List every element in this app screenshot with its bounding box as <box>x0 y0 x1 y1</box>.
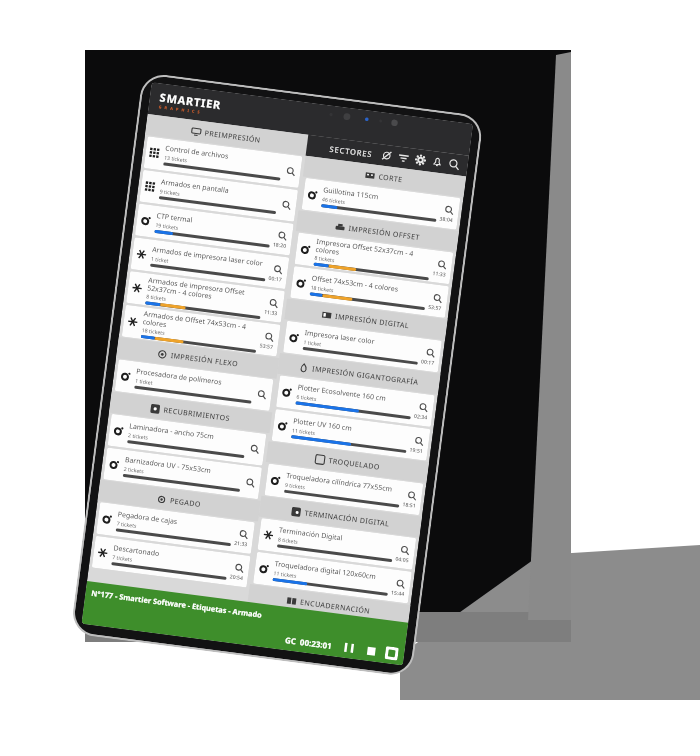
button[interactable]: CORTE <box>303 156 466 197</box>
button[interactable]: Notifications <box>428 153 447 172</box>
button[interactable]: Inspect Plotter UV 160 cm <box>412 434 425 447</box>
button[interactable]: Inspect Terminación Digital <box>398 543 411 556</box>
button[interactable]: Terminación Digital <box>257 518 416 570</box>
button[interactable]: Pegadora de cajas <box>96 502 255 554</box>
button[interactable]: Inspect Armados de Offset 74x53cm - 4 co… <box>262 330 276 343</box>
staticText: Impresora laser color <box>304 328 376 347</box>
button[interactable]: Armados de impresora laser color <box>130 237 289 289</box>
staticText: 18:51 <box>402 500 417 509</box>
staticText: 2 tickets <box>128 431 149 441</box>
staticText: 6 tickets <box>296 392 318 402</box>
staticText: 7 tickets <box>112 553 134 563</box>
button[interactable]: Impresora laser color <box>283 321 442 372</box>
button[interactable]: Procesadora de polímeros <box>115 359 273 411</box>
button[interactable]: Plotter UV 160 cm <box>272 409 430 461</box>
staticText: Pegadora de cajas <box>117 509 178 527</box>
staticText: 11 tickets <box>273 569 298 579</box>
staticText: IMPRESIÓN FLEXO <box>170 350 239 369</box>
button[interactable]: Inspect CTP termal <box>275 229 289 242</box>
staticText: Armados de impresora Offset 52x37cm - 4 … <box>147 275 264 307</box>
button[interactable]: Plotter Ecosolvente 160 cm <box>276 375 435 427</box>
staticText: Plotter Ecosolvente 160 cm <box>297 383 386 404</box>
button[interactable]: Inspect Impresora laser color <box>424 346 437 359</box>
button[interactable]: CTP termal <box>135 204 294 255</box>
button[interactable]: Inspect Control de archivos <box>284 164 297 177</box>
staticText: 04:05 <box>395 555 410 563</box>
button[interactable]: IMPRESIÓN FLEXO <box>116 337 279 379</box>
button[interactable]: IMPRESIÓN OFFSET <box>296 210 459 252</box>
button[interactable]: Stop <box>362 642 379 659</box>
button[interactable]: Search <box>445 155 464 174</box>
staticText: 15:44 <box>391 588 405 597</box>
button[interactable]: Armados en pantalla <box>139 170 298 222</box>
button[interactable]: Inspect Armados de impresora Offset 52x3… <box>267 296 280 309</box>
staticText: 21:33 <box>234 539 249 547</box>
button[interactable]: ENCUADERNACIÓN <box>247 584 411 626</box>
button[interactable]: Inspect Barnizadora UV - 75x53cm <box>243 475 257 489</box>
button[interactable]: Inspect Laminadora - ancho 75cm <box>248 442 261 455</box>
staticText: 46 tickets <box>322 195 346 205</box>
staticText: GC 00:23:01 <box>284 634 333 651</box>
button[interactable]: Inspect Armados de impresora laser color <box>271 262 284 276</box>
button[interactable]: Offset 74x53cm - 4 colores <box>290 266 449 318</box>
button[interactable]: Inspect Plotter Ecosolvente 160 cm <box>416 400 430 414</box>
button[interactable]: PEGADO <box>97 480 261 522</box>
staticText: Procesadora de polímeros <box>136 367 222 388</box>
button[interactable]: Impresora Offset 52x37cm - 4 colores <box>294 232 453 284</box>
button[interactable]: Pause <box>341 639 357 656</box>
staticText: 02:34 <box>414 412 428 420</box>
staticText: TROQUELADO <box>328 455 381 472</box>
button[interactable]: Hide sectors <box>377 146 396 165</box>
button[interactable]: RECUBRIMIENTOS <box>109 392 272 433</box>
button[interactable]: Inspect Troqueladora cilíndrica 77x55cm <box>405 488 418 502</box>
button[interactable]: N°177 - Smartier Software - Etiquetas - … <box>90 582 408 644</box>
button[interactable]: IMPRESIÓN DIGITAL <box>284 298 448 340</box>
staticText: CTP termal <box>156 211 194 226</box>
staticText: Armados en pantalla <box>160 177 230 196</box>
staticText: Armados de Offset 74x53cm - 4 colores <box>142 309 259 341</box>
staticText: IMPRESIÓN DIGITAL <box>335 311 410 330</box>
staticText: Impresora Offset 52x37cm - 4 colores <box>315 237 432 269</box>
button[interactable]: IMPRESIÓN GIGANTOGRAFÍA <box>277 353 441 395</box>
button[interactable]: Armados de Offset 74x53cm - 4 colores <box>122 305 281 356</box>
staticText: 11:33 <box>264 308 279 316</box>
button[interactable]: Plegadora <box>246 606 405 658</box>
staticText: 11 tickets <box>292 426 316 436</box>
button[interactable]: Inspect Troqueladora digital 120x60cm <box>394 577 407 590</box>
button[interactable]: TERMINACIÓN DIGITAL <box>259 496 422 537</box>
button[interactable]: Inspect Offset 74x53cm - 4 colores <box>431 291 444 304</box>
button[interactable]: Barnizadora UV - 75x53cm <box>103 447 262 499</box>
staticText: 20:54 <box>229 572 244 581</box>
button[interactable]: Troqueladora digital 120x60cm <box>253 552 412 603</box>
button[interactable]: Inspect Guillotina 115cm <box>442 203 455 216</box>
button[interactable]: Laminadora - ancho 75cm <box>108 414 266 466</box>
staticText: 7 tickets <box>116 519 138 529</box>
staticText: 38:04 <box>439 214 454 223</box>
button[interactable]: Inspect Procesadora de polímeros <box>255 387 268 401</box>
button[interactable]: Armados de impresora Offset 52x37cm - 4 … <box>126 271 285 323</box>
button[interactable]: Inspect Armados en pantalla <box>279 198 293 211</box>
button[interactable]: Filter <box>394 148 413 167</box>
staticText: Armados de impresora laser color <box>152 245 264 269</box>
staticText: Control de archivos <box>165 144 229 162</box>
staticText: IMPRESIÓN GIGANTOGRAFÍA <box>312 363 419 387</box>
button[interactable]: Guillotina 115cm <box>302 178 460 230</box>
staticText: N°177 - Smartier Software - Etiquetas - … <box>91 588 263 620</box>
button[interactable]: Inspect Impresora Offset 52x37cm - 4 col… <box>435 257 448 271</box>
button[interactable]: Control de archivos <box>144 136 302 188</box>
staticText: Troqueladora digital 120x60cm <box>274 559 376 582</box>
staticText: 18 tickets <box>310 283 335 293</box>
button[interactable]: Delete <box>384 646 399 661</box>
button[interactable]: Settings <box>411 150 430 169</box>
staticText: 53:57 <box>259 341 274 350</box>
button[interactable]: Inspect Plegadora <box>386 634 399 648</box>
button[interactable]: Descartonado <box>92 536 251 588</box>
button[interactable]: Inspect Descartonado <box>232 561 246 574</box>
staticText: 00:17 <box>268 274 283 283</box>
button[interactable]: TROQUELADO <box>266 441 429 483</box>
button[interactable]: PREIMPRESIÓN <box>145 114 308 156</box>
button[interactable]: Troqueladora cilíndrica 77x55cm <box>264 463 423 515</box>
button[interactable]: Inspect Pegadora de cajas <box>237 527 250 540</box>
staticText: CORTE <box>378 171 404 184</box>
